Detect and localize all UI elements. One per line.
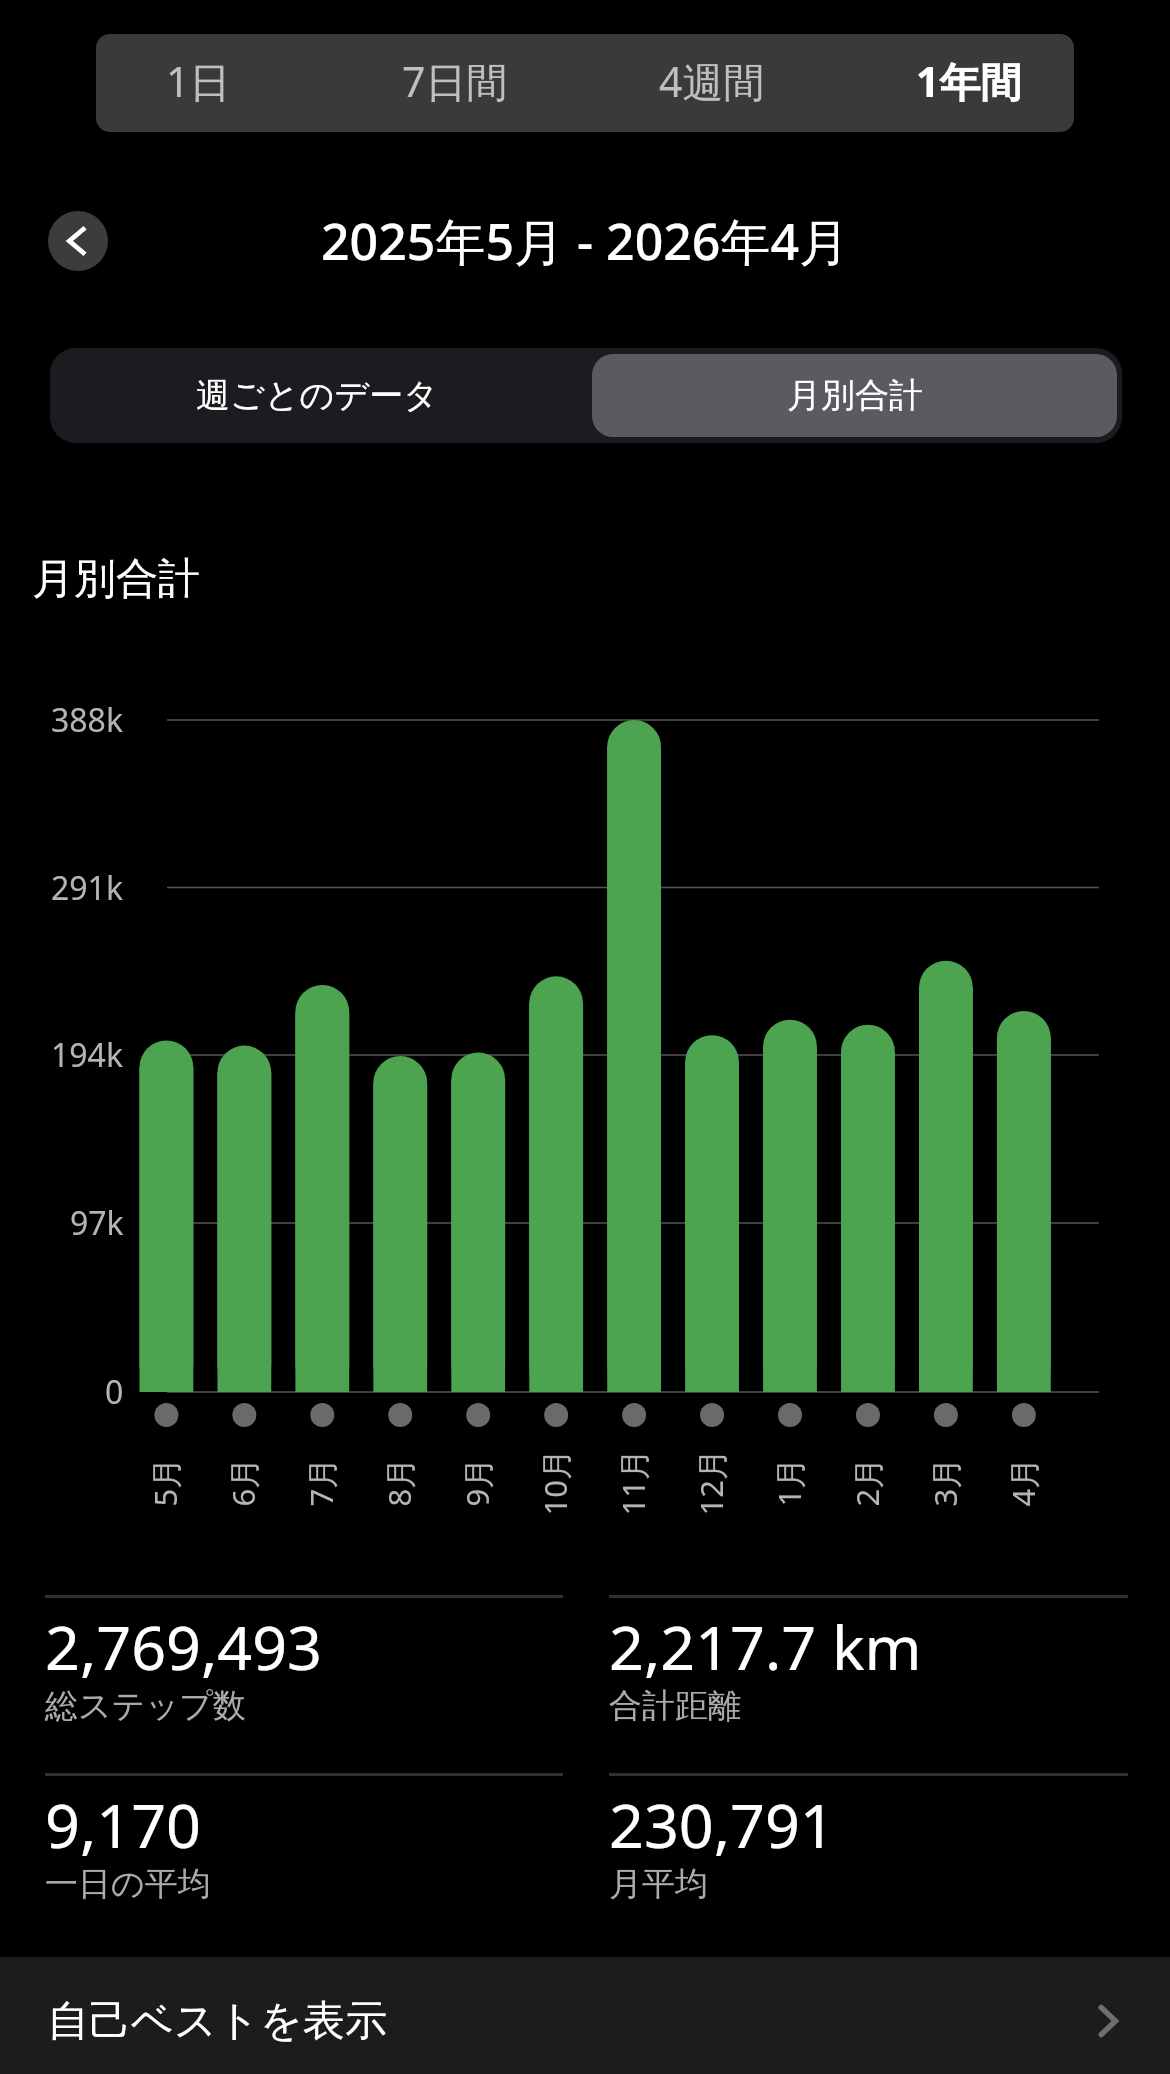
staticText: 2025年5月 - 2026年4月 — [321, 207, 850, 275]
staticText: 1日 — [166, 53, 231, 109]
button[interactable]: 自己ベストを表示 — [0, 1957, 1170, 2074]
staticText: 11月 — [611, 1448, 653, 1515]
staticText: 9,170 — [45, 1783, 201, 1866]
staticText: 4月 — [1001, 1457, 1043, 1506]
button[interactable]: 1日 — [70, 32, 326, 130]
staticText: 10月 — [533, 1448, 575, 1515]
staticText: 総ステップ数 — [45, 1685, 247, 1727]
staticText: 一日の平均 — [45, 1863, 211, 1905]
button[interactable]: 1年間 — [840, 32, 1097, 130]
staticText: 月平均 — [609, 1863, 708, 1905]
staticText: 7月 — [299, 1457, 341, 1506]
staticText: 6月 — [221, 1457, 263, 1506]
staticText: 月別合計 — [787, 374, 923, 417]
staticText: 7日間 — [402, 53, 508, 109]
button[interactable]: 4週間 — [583, 32, 840, 130]
staticText: 5月 — [143, 1457, 185, 1506]
staticText: 8月 — [377, 1457, 419, 1506]
button[interactable]: 7日間 — [326, 32, 583, 130]
staticText: 291k — [51, 866, 124, 910]
staticText: 9月 — [455, 1457, 497, 1506]
staticText: 週ごとのデータ — [196, 374, 438, 417]
staticText: 自己ベストを表示 — [47, 1995, 387, 2048]
staticText: 0 — [105, 1370, 124, 1414]
staticText: 月別合計 — [32, 553, 200, 606]
staticText: 230,791 — [609, 1783, 835, 1866]
staticText: 97k — [70, 1201, 124, 1245]
button[interactable]: 週ごとのデータ — [55, 354, 592, 437]
staticText: 12月 — [689, 1448, 731, 1515]
staticText: 1年間 — [916, 53, 1022, 109]
staticText: 合計距離 — [609, 1685, 741, 1727]
staticText: 3月 — [923, 1457, 965, 1506]
staticText: 388k — [51, 698, 124, 742]
staticText: 2,769,493 — [45, 1605, 322, 1688]
staticText: 4週間 — [659, 53, 765, 109]
staticText: 2,217.7 km — [609, 1605, 922, 1688]
button[interactable]: 月別合計 — [592, 354, 1117, 437]
button[interactable]: Back — [48, 211, 108, 271]
staticText: 1月 — [767, 1457, 809, 1506]
staticText: 2月 — [845, 1457, 887, 1506]
staticText: 194k — [51, 1033, 124, 1077]
